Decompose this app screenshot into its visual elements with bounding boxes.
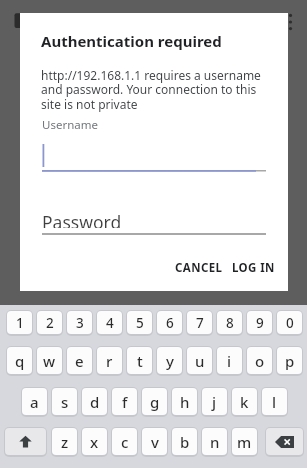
button[interactable]: 8 bbox=[217, 311, 242, 334]
staticText: e bbox=[75, 351, 84, 371]
staticText: c bbox=[121, 432, 129, 452]
button[interactable]: n bbox=[202, 428, 227, 455]
staticText: w bbox=[43, 351, 56, 371]
staticText: i bbox=[227, 351, 232, 371]
button[interactable]: f bbox=[112, 388, 137, 415]
staticText: g bbox=[150, 392, 160, 412]
staticText: 5 bbox=[136, 314, 144, 332]
button[interactable]: y bbox=[157, 347, 182, 374]
staticText: s bbox=[61, 392, 69, 412]
staticText: m bbox=[237, 432, 252, 452]
staticText: 9 bbox=[256, 314, 264, 332]
staticText: r bbox=[106, 351, 113, 371]
staticText: 1 bbox=[16, 314, 24, 332]
staticText: Username bbox=[42, 117, 98, 133]
staticText: 0 bbox=[286, 314, 294, 332]
staticText: http://192.168.1.1 requires a username a… bbox=[41, 67, 281, 113]
button[interactable]: i bbox=[217, 347, 242, 374]
button[interactable]: e bbox=[67, 347, 92, 374]
button[interactable]: c bbox=[112, 428, 137, 455]
staticText: q bbox=[15, 351, 25, 371]
button[interactable]: 0 bbox=[277, 311, 302, 334]
button[interactable]: h bbox=[172, 388, 197, 415]
staticText: n bbox=[210, 432, 220, 452]
button[interactable]: 4 bbox=[97, 311, 122, 334]
staticText: 4 bbox=[106, 314, 114, 332]
staticText: a bbox=[30, 392, 39, 412]
staticText: j bbox=[212, 392, 217, 412]
button[interactable]: More options bbox=[286, 12, 296, 32]
staticText: f bbox=[122, 392, 128, 412]
staticText: 3 bbox=[76, 314, 84, 332]
staticText: z bbox=[61, 432, 69, 452]
staticText: t bbox=[137, 351, 143, 371]
staticText: y bbox=[166, 351, 174, 371]
button[interactable]: m bbox=[232, 428, 257, 455]
staticText: u bbox=[195, 351, 205, 371]
button[interactable]: Username input bbox=[42, 141, 266, 172]
button[interactable]: s bbox=[52, 388, 77, 415]
button[interactable]: Site info bbox=[12, 11, 22, 30]
button[interactable]: r bbox=[97, 347, 122, 374]
button[interactable]: Backspace bbox=[266, 428, 303, 455]
button[interactable]: g bbox=[142, 388, 167, 415]
button[interactable]: Shift bbox=[5, 428, 46, 455]
button[interactable]: 2 bbox=[37, 311, 62, 334]
button[interactable]: l bbox=[262, 388, 287, 415]
button[interactable]: b bbox=[172, 428, 197, 455]
staticText: p bbox=[285, 351, 295, 371]
button[interactable]: o bbox=[247, 347, 272, 374]
button[interactable]: v bbox=[142, 428, 167, 455]
staticText: b bbox=[180, 432, 190, 452]
button[interactable]: 3 bbox=[67, 311, 92, 334]
staticText: d bbox=[90, 392, 100, 412]
staticText: CANCEL bbox=[175, 260, 223, 276]
staticText: 8 bbox=[226, 314, 234, 332]
staticText: 6 bbox=[166, 314, 174, 332]
staticText: 7 bbox=[196, 314, 204, 332]
button[interactable]: 5 bbox=[127, 311, 152, 334]
button[interactable]: t bbox=[127, 347, 152, 374]
staticText: h bbox=[180, 392, 190, 412]
button[interactable]: d bbox=[82, 388, 107, 415]
button[interactable]: 1 bbox=[7, 311, 32, 334]
staticText: k bbox=[240, 392, 249, 412]
button[interactable]: z bbox=[52, 428, 77, 455]
button[interactable]: k bbox=[232, 388, 257, 415]
staticText: 2 bbox=[46, 314, 54, 332]
staticText: v bbox=[151, 432, 159, 452]
button[interactable]: q bbox=[7, 347, 32, 374]
button[interactable]: a bbox=[22, 388, 47, 415]
button[interactable]: CANCEL bbox=[171, 253, 227, 283]
staticText: o bbox=[255, 351, 265, 371]
button[interactable]: u bbox=[187, 347, 212, 374]
staticText: LOG IN bbox=[232, 260, 275, 276]
button[interactable]: 6 bbox=[157, 311, 182, 334]
button[interactable]: 9 bbox=[247, 311, 272, 334]
button[interactable]: LOG IN bbox=[228, 253, 279, 283]
button[interactable]: 7 bbox=[187, 311, 212, 334]
staticText: Authentication required bbox=[41, 31, 222, 51]
staticText: x bbox=[90, 432, 99, 452]
button[interactable]: Password input bbox=[42, 217, 266, 235]
staticText: Password bbox=[42, 210, 122, 228]
button[interactable]: p bbox=[277, 347, 302, 374]
staticText: l bbox=[272, 392, 277, 412]
button[interactable]: w bbox=[37, 347, 62, 374]
button[interactable]: j bbox=[202, 388, 227, 415]
button[interactable]: x bbox=[82, 428, 107, 455]
